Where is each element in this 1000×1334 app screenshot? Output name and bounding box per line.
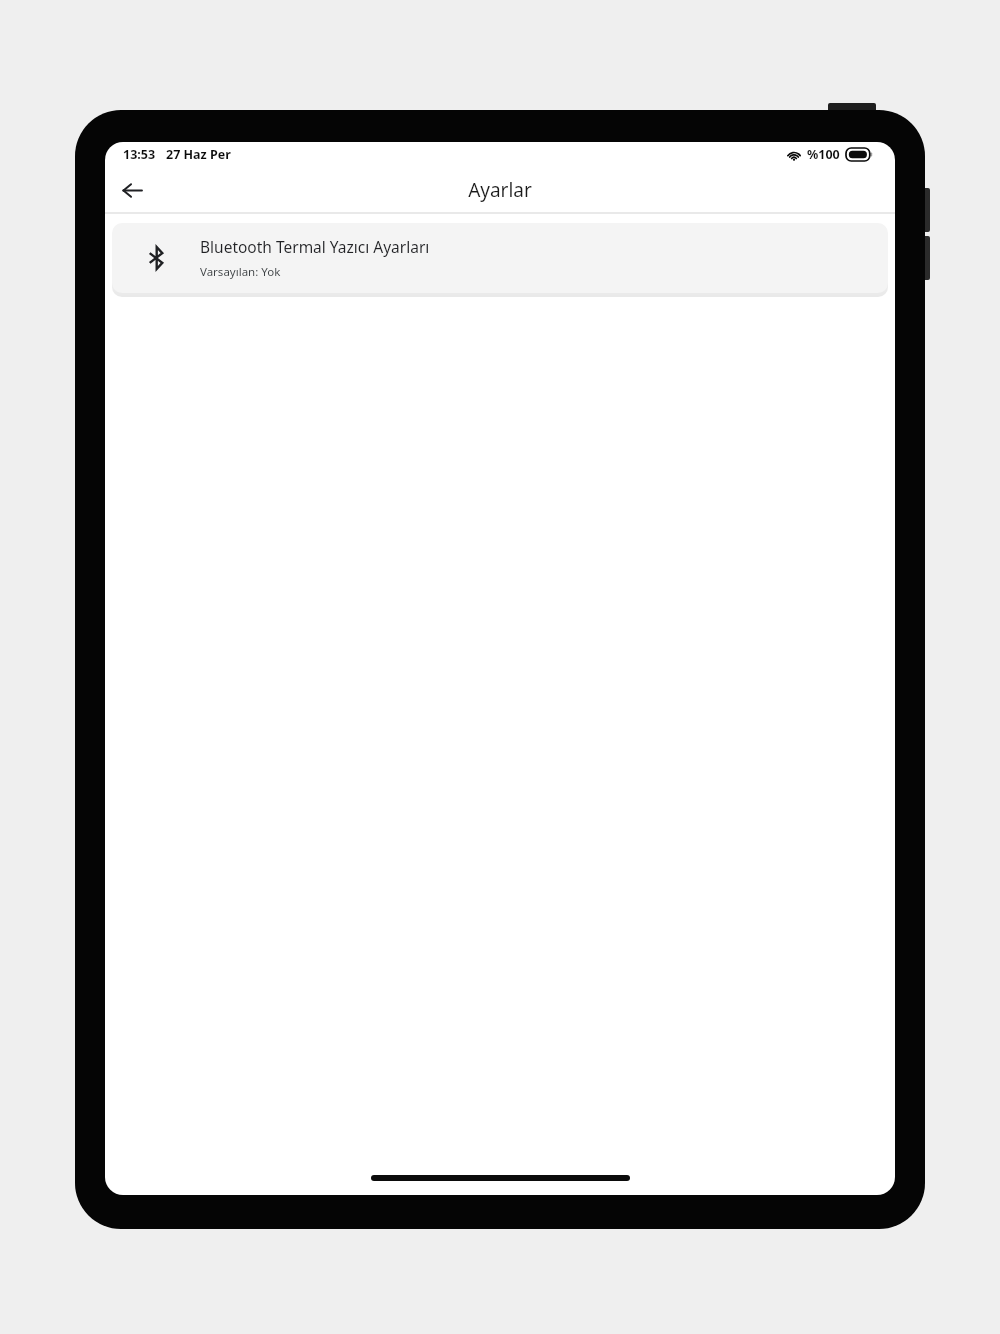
button[interactable]: Back (110, 168, 154, 212)
staticText: 27 Haz Per (166, 146, 231, 163)
staticText: Varsayılan: Yok (200, 264, 281, 280)
staticText: %100 (807, 146, 840, 163)
button[interactable]: Bluetooth Termal Yazıcı Ayarları (112, 223, 888, 293)
staticText: 13:53 (123, 146, 156, 163)
staticText: Bluetooth Termal Yazıcı Ayarları (200, 236, 430, 257)
staticText: Ayarlar (468, 177, 532, 203)
